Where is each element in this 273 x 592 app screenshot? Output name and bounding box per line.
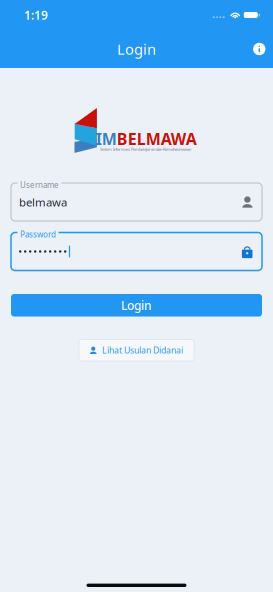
staticText: Sistem Informasi Pembelajaran dan Kemaha… [100, 146, 191, 152]
staticText: Username [20, 179, 59, 190]
staticText: Password [20, 229, 56, 240]
staticText: BELMAWA [117, 128, 197, 150]
button[interactable]: Info [242, 32, 273, 66]
staticText: Lihat Usulan Didanai [102, 344, 183, 356]
staticText: IM [96, 128, 117, 150]
staticText: Login [117, 39, 156, 59]
button[interactable]: Login [11, 294, 262, 316]
staticText: Login [121, 297, 152, 313]
button[interactable]: Lihat Usulan Didanai [79, 339, 194, 361]
staticText: belmawa [19, 194, 67, 210]
staticText: 1:19 [24, 7, 48, 23]
